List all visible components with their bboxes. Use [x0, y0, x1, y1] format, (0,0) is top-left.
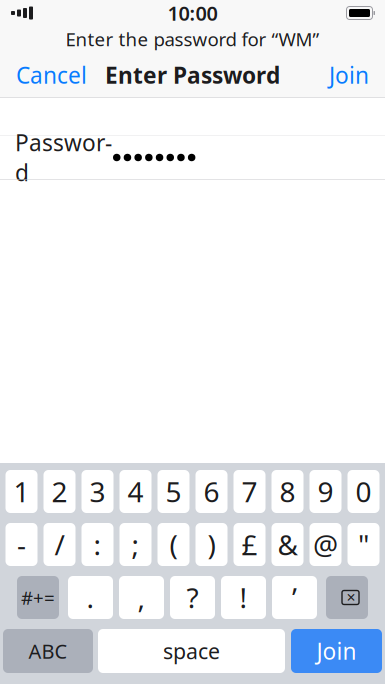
- button[interactable]: #+=: [17, 576, 59, 619]
- button[interactable]: Join: [313, 52, 385, 98]
- button[interactable]: 3: [81, 470, 113, 513]
- staticText: !: [239, 579, 247, 616]
- button[interactable]: Delete: [326, 576, 368, 619]
- button[interactable]: 1: [5, 470, 37, 513]
- staticText: ): [207, 526, 215, 563]
- button[interactable]: @: [309, 523, 341, 566]
- staticText: Join: [329, 60, 369, 90]
- button[interactable]: 4: [119, 470, 151, 513]
- staticText: 3: [89, 473, 105, 510]
- staticText: £: [241, 526, 257, 563]
- button[interactable]: £: [233, 523, 265, 566]
- button[interactable]: ,: [119, 576, 164, 619]
- staticText: 0: [355, 473, 371, 510]
- button[interactable]: 8: [271, 470, 303, 513]
- button[interactable]: :: [81, 523, 113, 566]
- staticText: 6: [203, 473, 219, 510]
- staticText: ABC: [28, 638, 67, 664]
- button[interactable]: ;: [119, 523, 151, 566]
- staticText: ?: [186, 579, 198, 616]
- staticText: #+=: [21, 585, 55, 610]
- staticText: &: [277, 526, 297, 563]
- button[interactable]: 2: [43, 470, 75, 513]
- staticText: /: [54, 526, 64, 563]
- button[interactable]: Cancel: [0, 52, 103, 98]
- button[interactable]: /: [43, 523, 75, 566]
- button[interactable]: .: [68, 576, 113, 619]
- staticText: @: [313, 526, 338, 563]
- staticText: Enter Password: [105, 60, 280, 90]
- button[interactable]: ABC: [3, 629, 93, 673]
- button[interactable]: ’: [272, 576, 317, 619]
- staticText: ,: [137, 579, 145, 616]
- staticText: ’: [292, 579, 297, 616]
- staticText: :: [93, 526, 101, 563]
- button[interactable]: space: [98, 629, 285, 673]
- button[interactable]: ?: [170, 576, 215, 619]
- staticText: Join: [316, 636, 356, 666]
- staticText: 7: [241, 473, 257, 510]
- button[interactable]: &: [271, 523, 303, 566]
- button[interactable]: Join: [291, 629, 382, 673]
- button[interactable]: ): [195, 523, 227, 566]
- staticText: ": [358, 526, 369, 563]
- staticText: 2: [51, 473, 67, 510]
- button[interactable]: (: [157, 523, 189, 566]
- staticText: ✕: [346, 591, 356, 604]
- staticText: 1: [13, 473, 29, 510]
- button[interactable]: 9: [309, 470, 341, 513]
- staticText: 8: [279, 473, 295, 510]
- button[interactable]: -: [5, 523, 37, 566]
- button[interactable]: Password: [0, 135, 385, 179]
- staticText: 5: [165, 473, 181, 510]
- staticText: Password: [15, 127, 112, 188]
- staticText: 4: [127, 473, 143, 510]
- button[interactable]: 6: [195, 470, 227, 513]
- button[interactable]: 0: [347, 470, 379, 513]
- button[interactable]: 5: [157, 470, 189, 513]
- button[interactable]: ": [347, 523, 379, 566]
- staticText: .: [86, 579, 94, 616]
- staticText: Cancel: [16, 60, 87, 90]
- staticText: (: [169, 526, 177, 563]
- staticText: -: [17, 526, 26, 563]
- button[interactable]: !: [221, 576, 266, 619]
- staticText: ;: [131, 526, 139, 563]
- staticText: space: [163, 637, 220, 665]
- button[interactable]: 7: [233, 470, 265, 513]
- staticText: Enter the password for “WM”: [65, 27, 319, 51]
- staticText: 10:00: [167, 0, 217, 26]
- staticText: 9: [317, 473, 333, 510]
